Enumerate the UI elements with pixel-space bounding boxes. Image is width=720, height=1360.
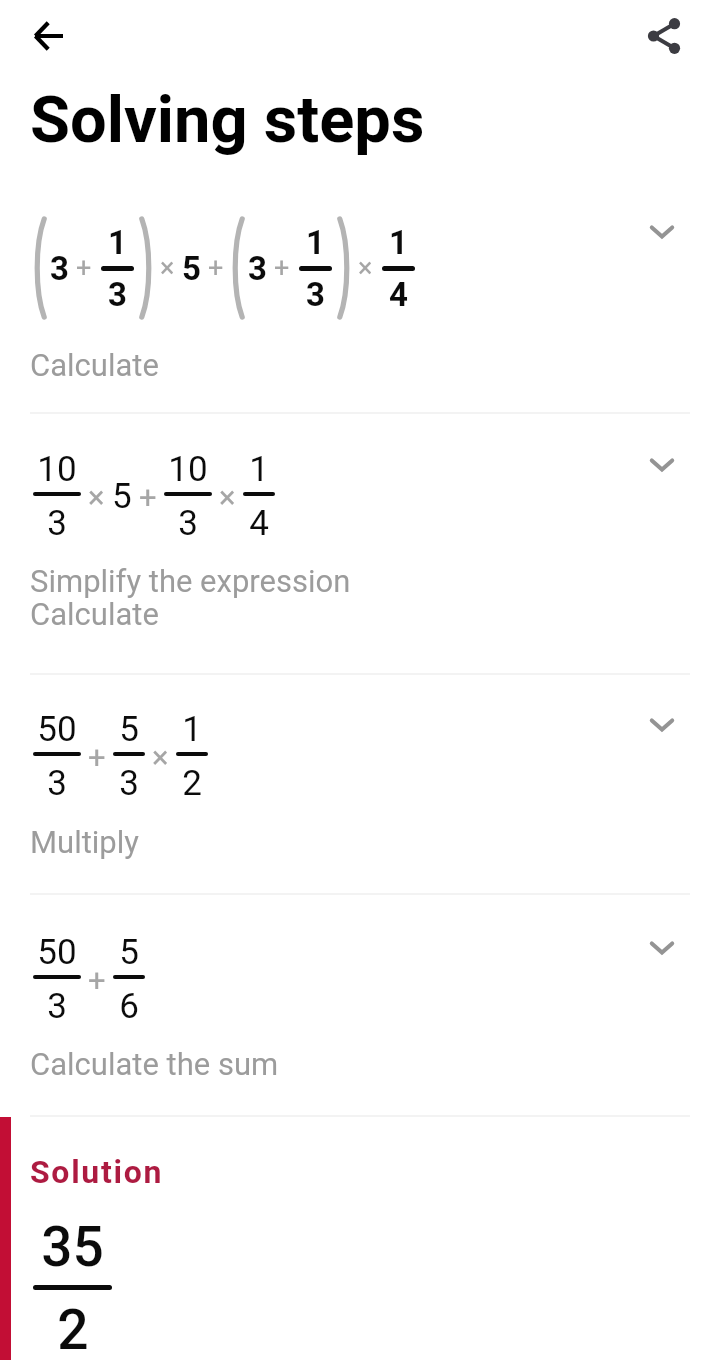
staticText: 50 [37, 709, 77, 750]
staticText: 5 [119, 709, 139, 750]
staticText: 1 [389, 223, 408, 262]
staticText: 2 [182, 763, 202, 804]
button[interactable]: Back [17, 4, 81, 68]
staticText: Calculate the sum [30, 1046, 279, 1082]
staticText: 3 [108, 275, 127, 314]
staticText: 1 [108, 223, 127, 262]
staticText: 1 [182, 709, 202, 750]
button[interactable]: Expand step [636, 922, 688, 974]
staticText: 3 [50, 249, 69, 288]
button[interactable]: Expand step [636, 206, 688, 258]
staticText: 3 [248, 249, 267, 288]
staticText: + [88, 962, 106, 998]
staticText: Solution [30, 1153, 164, 1191]
staticText: × [152, 739, 169, 775]
staticText: Simplify the expression Calculate [30, 563, 351, 633]
button[interactable]: 50 [0, 895, 720, 1115]
staticText: 6 [119, 986, 139, 1027]
staticText: Multiply [30, 824, 139, 860]
staticText: Calculate [30, 347, 159, 383]
staticText: + [88, 739, 106, 775]
staticText: × [160, 252, 175, 284]
staticText: 35 [41, 1215, 104, 1279]
staticText: 5 [119, 932, 139, 973]
staticText: 3 [47, 503, 67, 544]
button[interactable]: 10 [0, 414, 720, 673]
button[interactable]: Expand step [636, 439, 688, 491]
staticText: 5 [182, 249, 201, 288]
staticText: + [139, 479, 157, 515]
staticText: 4 [389, 275, 408, 314]
staticText: 3 [306, 275, 325, 314]
button[interactable]: 50 [0, 675, 720, 893]
staticText: 2 [57, 1298, 89, 1360]
staticText: + [76, 252, 92, 284]
staticText: 5 [112, 476, 132, 517]
staticText: 3 [47, 763, 67, 804]
staticText: 3 [119, 763, 139, 804]
staticText: 1 [306, 223, 325, 262]
staticText: 10 [168, 449, 208, 490]
staticText: + [208, 252, 224, 284]
staticText: × [219, 479, 236, 515]
staticText: 4 [249, 503, 269, 544]
button[interactable]: 3 [0, 216, 720, 412]
staticText: 1 [249, 449, 269, 490]
staticText: 10 [37, 449, 77, 490]
button[interactable]: Expand step [636, 699, 688, 751]
staticText: 50 [37, 932, 77, 973]
staticText: × [88, 479, 105, 515]
staticText: 3 [47, 986, 67, 1027]
staticText: × [358, 252, 373, 284]
button[interactable]: Share [632, 4, 696, 68]
staticText: 3 [178, 503, 198, 544]
staticText: Solving steps [30, 82, 425, 158]
staticText: + [274, 252, 290, 284]
